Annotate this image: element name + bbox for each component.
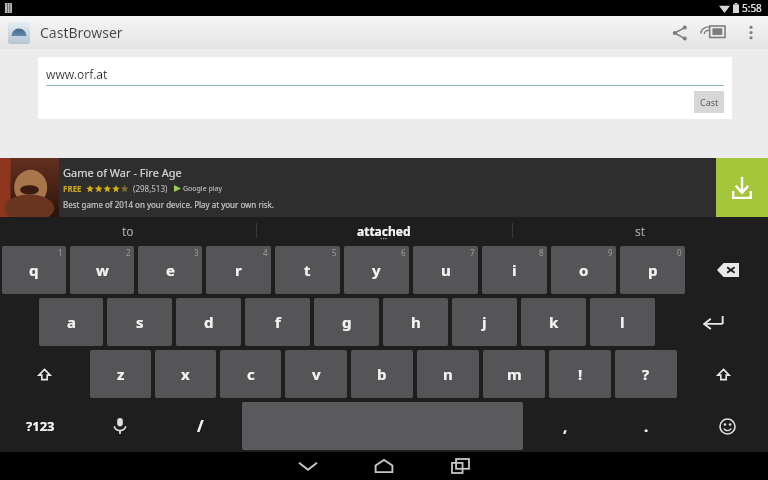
button[interactable]: w	[70, 246, 134, 294]
button[interactable]: h	[383, 298, 448, 346]
staticText: ?	[642, 364, 650, 384]
staticText: m	[507, 364, 522, 384]
button[interactable]: r	[206, 246, 271, 294]
staticText: 0	[677, 247, 682, 258]
staticText: 3	[194, 247, 199, 258]
button[interactable]: st	[512, 217, 768, 244]
staticText: g	[342, 312, 352, 332]
staticText: to	[122, 223, 134, 239]
staticText: 8	[539, 247, 544, 258]
staticText: f	[275, 312, 281, 332]
staticText: n	[443, 364, 453, 384]
button[interactable]: ?123	[2, 402, 78, 450]
staticText: (298,513)	[133, 183, 168, 194]
button[interactable]: n	[417, 350, 479, 398]
button[interactable]: Shift	[681, 350, 766, 398]
button[interactable]: b	[351, 350, 413, 398]
button[interactable]: j	[452, 298, 517, 346]
button[interactable]: l	[590, 298, 655, 346]
button[interactable]: g	[314, 298, 379, 346]
staticText: a	[67, 312, 76, 332]
staticText: e	[166, 260, 175, 280]
staticText: k	[549, 312, 559, 332]
button[interactable]: Hide keyboard	[270, 452, 346, 480]
staticText: d	[204, 312, 214, 332]
button[interactable]: m	[483, 350, 545, 398]
staticText: 6	[401, 247, 406, 258]
button[interactable]: to	[0, 217, 256, 244]
button[interactable]: Home	[346, 452, 422, 480]
staticText: z	[117, 364, 125, 384]
staticText: 7	[470, 247, 475, 258]
staticText: 5	[332, 247, 337, 258]
button[interactable]: e	[138, 246, 202, 294]
staticText: b	[377, 364, 387, 384]
button[interactable]: Voice input	[82, 402, 158, 450]
staticText: ?123	[26, 417, 55, 435]
staticText: j	[482, 312, 487, 332]
staticText: y	[372, 260, 381, 280]
button[interactable]: .	[608, 402, 685, 450]
staticText: i	[512, 260, 517, 280]
button[interactable]: Game of War - Fire Age	[0, 158, 768, 217]
button[interactable]: Cast	[698, 16, 734, 49]
staticText: q	[29, 260, 39, 280]
staticText: www.orf.at	[46, 66, 108, 82]
staticText: u	[441, 260, 451, 280]
button[interactable]: /	[162, 402, 238, 450]
staticText: o	[579, 260, 589, 280]
button[interactable]: Install	[716, 158, 768, 217]
staticText: ,	[563, 416, 568, 436]
staticText: p	[648, 260, 658, 280]
button[interactable]: p	[620, 246, 685, 294]
button[interactable]: u	[413, 246, 478, 294]
staticText: s	[136, 312, 144, 332]
button[interactable]: x	[155, 350, 216, 398]
staticText: FREE	[63, 183, 82, 194]
button[interactable]: Cast	[694, 91, 724, 113]
button[interactable]: Shift	[2, 350, 86, 398]
button[interactable]: Backspace	[689, 246, 766, 294]
staticText: Best game of 2014 on your device. Play a…	[63, 199, 274, 210]
button[interactable]: t	[275, 246, 340, 294]
button[interactable]: y	[344, 246, 409, 294]
button[interactable]: z	[90, 350, 151, 398]
staticText: 5:58	[742, 1, 762, 15]
staticText: h	[411, 312, 421, 332]
button[interactable]: More options	[734, 16, 768, 49]
button[interactable]: Share	[662, 16, 698, 49]
staticText: Cast	[700, 96, 719, 108]
staticText: ···	[380, 232, 388, 244]
button[interactable]: Recent apps	[422, 452, 498, 480]
staticText: v	[312, 364, 321, 384]
button[interactable]: d	[176, 298, 241, 346]
button[interactable]: f	[245, 298, 310, 346]
staticText: 4	[263, 247, 268, 258]
staticText: Game of War - Fire Age	[63, 165, 182, 180]
staticText: /	[197, 415, 204, 437]
staticText: r	[235, 260, 242, 280]
staticText: Google play	[183, 184, 223, 194]
button[interactable]: attached	[256, 217, 512, 244]
staticText: st	[635, 223, 646, 239]
button[interactable]: !	[549, 350, 611, 398]
button[interactable]: c	[220, 350, 281, 398]
staticText: 1	[58, 247, 63, 258]
button[interactable]: ?	[615, 350, 677, 398]
staticText: CastBrowser	[40, 23, 123, 42]
staticText: 9	[608, 247, 613, 258]
button[interactable]: ,	[527, 402, 604, 450]
button[interactable]: k	[521, 298, 586, 346]
button[interactable]: o	[551, 246, 616, 294]
staticText: !	[578, 364, 583, 384]
button[interactable]: s	[107, 298, 172, 346]
button[interactable]: i	[482, 246, 547, 294]
staticText: w	[96, 260, 109, 280]
button[interactable]: v	[285, 350, 347, 398]
button[interactable]: Enter	[659, 298, 766, 346]
button[interactable]: a	[39, 298, 103, 346]
button[interactable]: Emoji	[689, 402, 766, 450]
button[interactable]: q	[2, 246, 66, 294]
staticText: t	[304, 260, 311, 280]
